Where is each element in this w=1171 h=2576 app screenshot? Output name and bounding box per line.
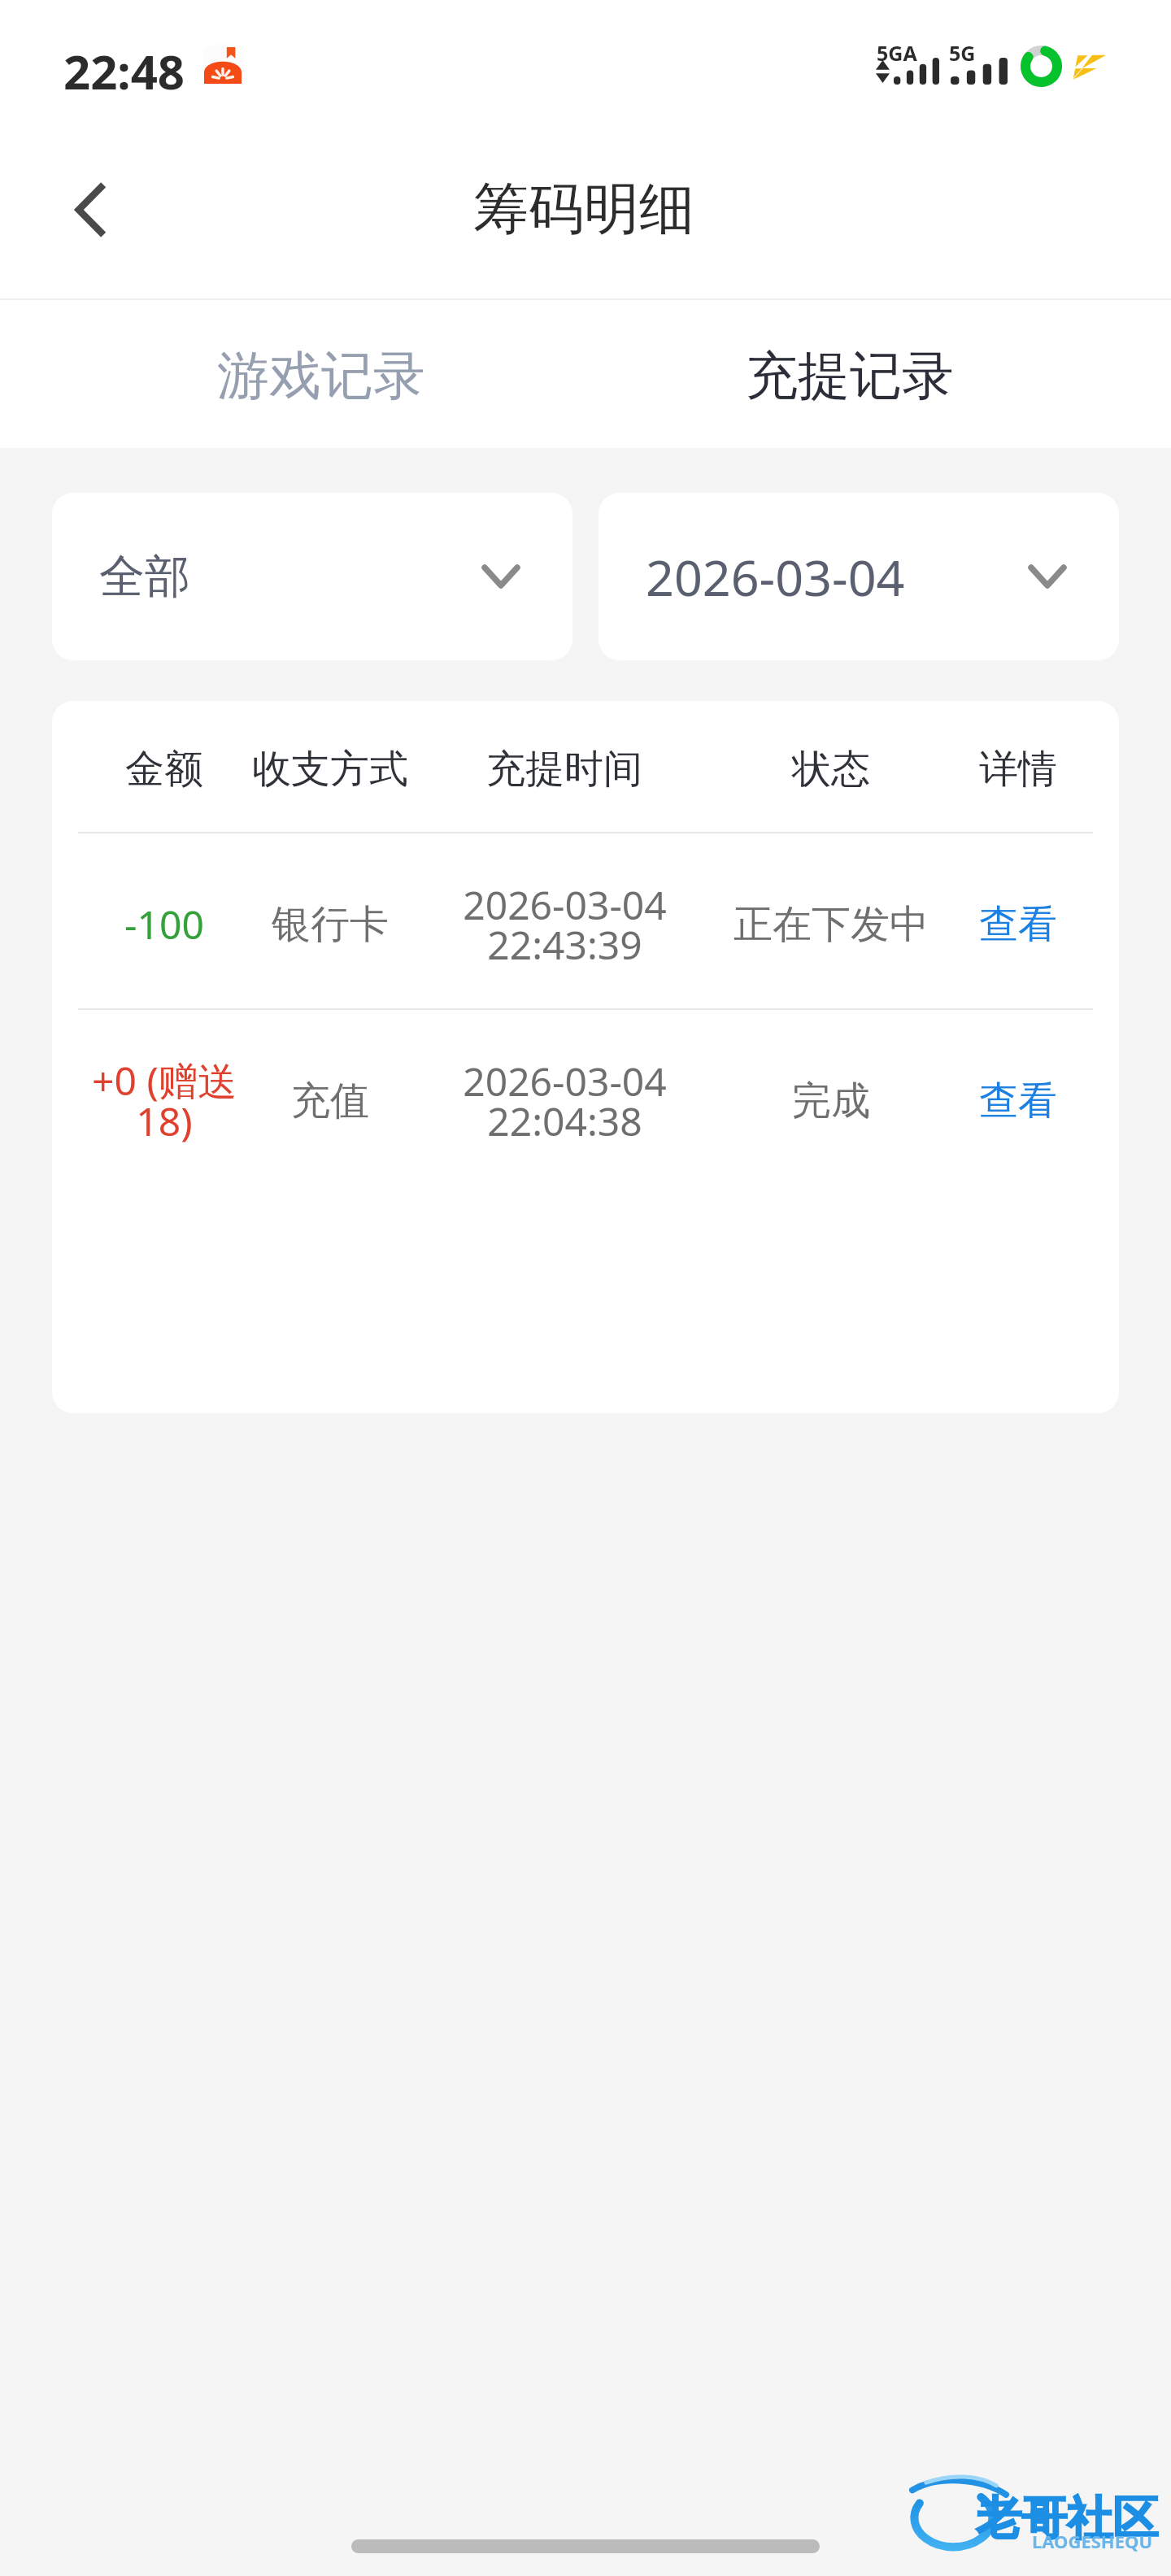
staticText: 全部 [99,548,190,606]
staticText: 充值 [291,1077,369,1125]
staticText: 状态 [792,745,870,794]
button[interactable]: 游戏记录 [0,300,585,448]
button[interactable]: Back [39,156,140,257]
staticText: 查看 [979,1077,1057,1125]
button[interactable]: 2026-03-04 [599,493,1119,660]
staticText: 收支方式 [252,745,408,794]
button[interactable]: 充提记录 [585,300,1171,448]
staticText: 2026-03-04 22:04:38 [463,1055,667,1147]
staticText: 筹码明细 [473,175,694,245]
staticText: 老哥社区 [976,2490,1158,2548]
staticText: 完成 [792,1077,870,1125]
staticText: 游戏记录 [217,343,425,409]
staticText: 22:48 [63,39,185,103]
staticText: 5G [949,39,976,67]
staticText: 充提时间 [486,745,642,794]
button[interactable]: 全部 [52,493,572,660]
staticText: +0 (赠送 18) [68,1054,260,1147]
staticText: LAOGESHEQU [1032,2529,1153,2553]
staticText: 银行卡 [272,900,389,949]
staticText: 查看 [979,900,1057,949]
staticText: 充提记录 [746,343,954,409]
staticText: 5GA [877,39,917,67]
staticText: 详情 [979,745,1057,794]
staticText: -100 [124,898,204,951]
staticText: 2026-03-04 22:43:39 [463,878,667,971]
staticText: 正在下发中 [734,900,929,949]
staticText: 金额 [125,745,203,794]
staticText: 2026-03-04 [646,543,905,611]
